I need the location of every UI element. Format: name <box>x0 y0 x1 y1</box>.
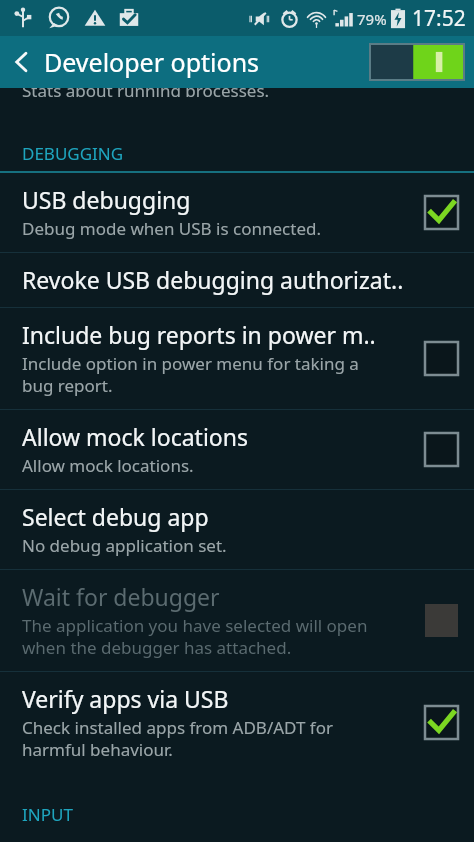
staticText: Allow mock locations. <box>22 454 194 477</box>
staticText: Include bug reports in power m.. <box>22 319 376 350</box>
button[interactable]: Wait for debugger <box>0 570 474 671</box>
staticText: Revoke USB debugging authorizat.. <box>22 264 404 295</box>
button[interactable]: USB debugging <box>0 173 474 252</box>
staticText: Allow mock locations <box>22 421 248 452</box>
staticText: DEBUGGING <box>22 142 124 165</box>
button[interactable]: Allow mock locations <box>0 410 474 489</box>
staticText: 79% <box>357 9 387 29</box>
staticText: Include option in power menu for taking … <box>22 352 359 397</box>
staticText: Verify apps via USB <box>22 683 229 714</box>
staticText: Stats about running processes. <box>22 88 270 97</box>
staticText: Developer options <box>44 45 260 79</box>
staticText: Check installed apps from ADB/ADT for ha… <box>22 716 334 761</box>
button[interactable]: Verify apps via USB <box>0 672 474 773</box>
staticText: Wait for debugger <box>22 581 220 612</box>
button[interactable]: Revoke USB debugging authorizat.. <box>0 253 474 307</box>
staticText: USB debugging <box>22 184 191 215</box>
button[interactable]: Back <box>0 40 44 84</box>
button[interactable]: Include bug reports in power m.. <box>0 308 474 409</box>
staticText: No debug application set. <box>22 534 227 557</box>
staticText: The application you have selected will o… <box>22 614 368 659</box>
staticText: 17:52 <box>412 4 466 33</box>
button[interactable]: Select debug app <box>0 490 474 569</box>
staticText: INPUT <box>22 803 73 826</box>
button[interactable]: Developer options on <box>370 44 464 80</box>
staticText: Debug mode when USB is connected. <box>22 217 321 240</box>
staticText: Select debug app <box>22 501 209 532</box>
